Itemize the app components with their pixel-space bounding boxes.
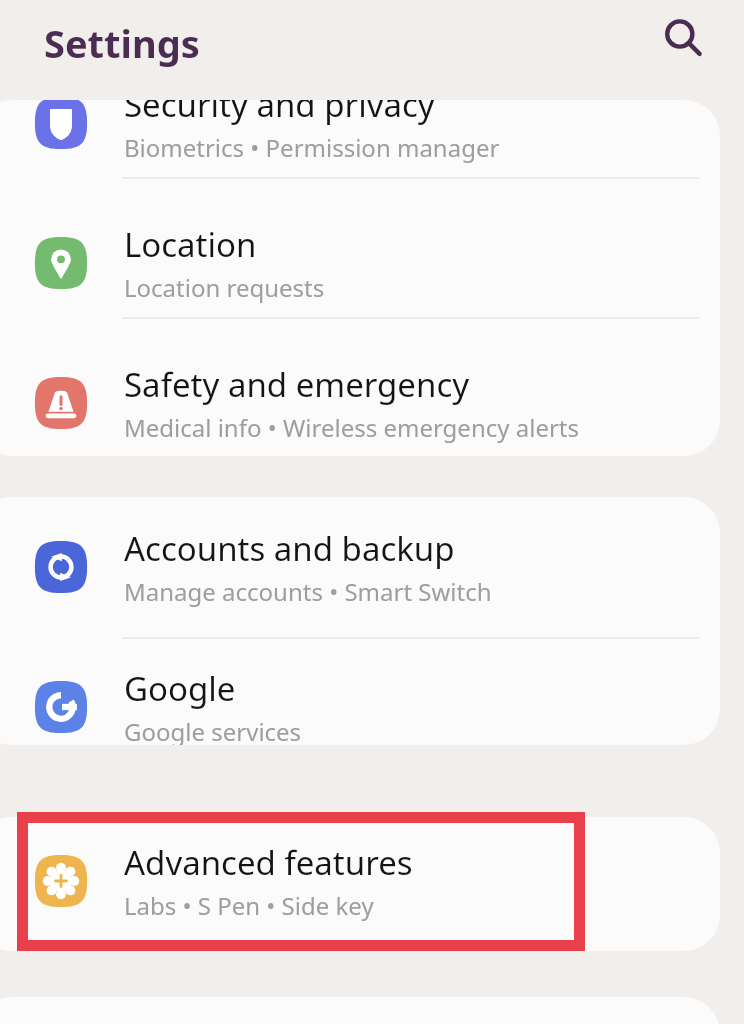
staticText: Medical info • Wireless emergency alerts bbox=[124, 411, 579, 444]
staticText: Biometrics • Permission manager bbox=[124, 131, 500, 164]
staticText: Settings bbox=[44, 17, 200, 69]
staticText: Google services bbox=[124, 715, 302, 745]
button[interactable]: Google bbox=[0, 637, 720, 745]
button[interactable]: Safety and emergency bbox=[0, 333, 720, 456]
button[interactable]: Location bbox=[0, 193, 720, 333]
button[interactable]: Advanced features bbox=[0, 817, 720, 948]
staticText: Location bbox=[124, 222, 257, 267]
staticText: Google bbox=[124, 666, 236, 711]
button[interactable]: Accounts and backup bbox=[0, 497, 720, 637]
staticText: Labs • S Pen • Side key bbox=[124, 889, 374, 922]
staticText: Manage accounts • Smart Switch bbox=[124, 575, 492, 608]
staticText: Advanced features bbox=[124, 840, 413, 885]
staticText: Location requests bbox=[124, 271, 325, 304]
staticText: Security and privacy bbox=[124, 100, 435, 127]
staticText: Safety and emergency bbox=[124, 362, 470, 407]
button[interactable]: Search bbox=[653, 8, 713, 68]
staticText: Accounts and backup bbox=[124, 526, 455, 571]
button[interactable]: Security and privacy bbox=[0, 100, 720, 193]
